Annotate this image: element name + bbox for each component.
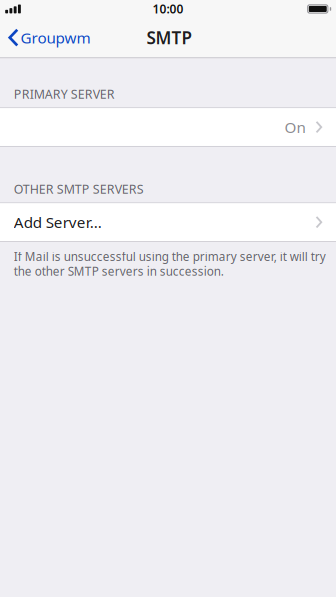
- staticText: Groupwm: [20, 27, 90, 48]
- staticText: Add Server...: [14, 212, 102, 232]
- button[interactable]: On: [0, 108, 336, 146]
- staticText: the other SMTP servers in succession.: [14, 263, 224, 279]
- button[interactable]: Groupwm: [0, 18, 124, 57]
- staticText: 10:00: [152, 1, 183, 17]
- staticText: OTHER SMTP SERVERS: [14, 181, 144, 197]
- staticText: If Mail is unsuccessful using the primar…: [14, 248, 326, 264]
- staticText: SMTP: [147, 26, 192, 49]
- staticText: On: [285, 117, 306, 137]
- staticText: PRIMARY SERVER: [14, 85, 115, 102]
- button[interactable]: Add Server...: [0, 203, 336, 241]
